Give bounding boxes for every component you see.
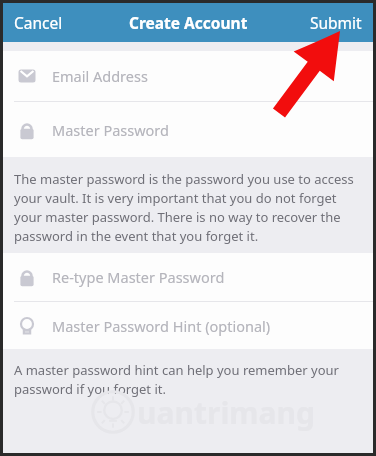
staticText: Cancel: [14, 12, 63, 33]
button[interactable]: Submit: [300, 6, 376, 39]
button[interactable]: Email Address: [0, 51, 376, 101]
staticText: The master password is the password you …: [14, 170, 356, 245]
staticText: Master Password: [52, 120, 169, 140]
staticText: A master password hint can help you reme…: [14, 361, 346, 398]
button[interactable]: Cancel: [0, 6, 73, 39]
staticText: Create Account: [129, 12, 248, 33]
button[interactable]: Re-type Master Password: [0, 253, 376, 301]
button[interactable]: Master Password: [0, 102, 376, 157]
staticText: Master Password Hint (optional): [52, 316, 271, 336]
staticText: Re-type Master Password: [52, 267, 225, 287]
staticText: Email Address: [52, 66, 148, 86]
staticText: uantrimang: [137, 392, 316, 433]
button[interactable]: Master Password Hint (optional): [0, 302, 376, 349]
staticText: Submit: [310, 12, 362, 33]
